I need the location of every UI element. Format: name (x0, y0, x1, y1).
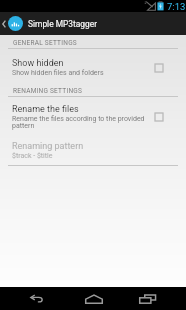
button[interactable]: Back (0, 287, 73, 310)
button[interactable]: Navigate up (0, 12, 25, 35)
button[interactable]: Recent apps (115, 287, 180, 310)
button[interactable]: Rename the files (0, 97, 186, 132)
staticText: RENAMING SETTINGS (13, 87, 83, 95)
staticText: Simple MP3tagger (28, 19, 98, 29)
staticText: Show hidden (12, 58, 64, 69)
staticText: Renaming pattern (12, 141, 84, 152)
staticText: 7:13 (167, 1, 186, 12)
staticText: Rename the files according to the provid… (12, 115, 145, 123)
button[interactable]: Renaming pattern (0, 133, 186, 164)
button[interactable]: Rename the files checkbox (153, 111, 165, 123)
staticText: GENERAL SETTINGS (13, 39, 77, 47)
button[interactable]: Show hidden (0, 49, 186, 80)
staticText: $track - $title (12, 152, 53, 160)
button[interactable]: Show hidden checkbox (153, 62, 165, 74)
staticText: pattern (12, 122, 35, 130)
staticText: Show hidden files and folders (12, 69, 104, 77)
button[interactable]: Home (73, 287, 115, 310)
staticText: Rename the files (12, 104, 79, 115)
